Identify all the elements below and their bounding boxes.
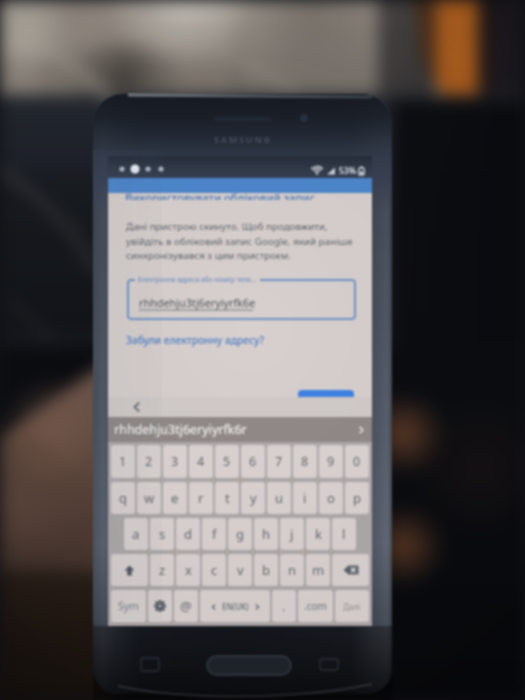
button[interactable]: o — [319, 482, 343, 514]
button[interactable]: u — [267, 482, 291, 514]
button[interactable]: rhhdehju3tj6eryiyrfk6r — [114, 417, 366, 442]
staticText: q — [119, 489, 127, 507]
button[interactable]: 0 — [345, 445, 369, 478]
staticText: 3 — [171, 453, 179, 470]
staticText: rhhdehju3tj6eryiyrfk6r — [114, 421, 247, 438]
button[interactable]: x — [176, 554, 200, 586]
staticText: 6 — [249, 453, 257, 470]
staticText: Дані пристрою скинуто. Щоб продовжити, у… — [126, 220, 353, 262]
button[interactable]: g — [228, 518, 252, 550]
staticText: j — [290, 525, 294, 543]
staticText: w — [144, 489, 155, 507]
staticText: x — [185, 561, 192, 579]
staticText: a — [132, 525, 140, 543]
staticText: 8 — [301, 453, 309, 470]
button[interactable]: n — [280, 554, 304, 586]
button[interactable]: i — [293, 482, 317, 514]
staticText: h — [262, 525, 271, 543]
button[interactable]: r — [189, 482, 213, 514]
staticText: l — [342, 525, 346, 543]
button[interactable]: h — [254, 518, 278, 550]
staticText: @ — [180, 597, 192, 615]
staticText: 1 — [119, 453, 127, 470]
staticText: EN(UK) — [222, 601, 249, 612]
button[interactable]: Back — [131, 401, 143, 413]
staticText: . — [282, 597, 286, 615]
button[interactable]: Далі — [335, 590, 369, 622]
staticText: r — [198, 489, 204, 507]
staticText: 0 — [353, 453, 361, 470]
staticText: i — [303, 489, 307, 507]
button[interactable]: EN(UK) — [200, 590, 270, 622]
button[interactable]: k — [306, 518, 330, 550]
button[interactable]: j — [280, 518, 304, 550]
staticText: p — [353, 489, 361, 507]
staticText: SAMSUNG — [214, 133, 272, 145]
staticText: 2 — [145, 453, 153, 470]
staticText: f — [212, 525, 217, 543]
button[interactable] — [127, 279, 356, 320]
button[interactable]: 5 — [215, 445, 239, 478]
button[interactable]: 8 — [293, 445, 317, 478]
staticText: 53% — [339, 165, 356, 177]
button[interactable]: e — [163, 482, 187, 514]
staticText: c — [211, 561, 218, 579]
button[interactable]: Shift — [111, 554, 148, 586]
staticText: .com — [304, 599, 327, 613]
button[interactable]: l — [332, 518, 356, 550]
button[interactable]: t — [215, 482, 239, 514]
button[interactable]: d — [176, 518, 200, 550]
button[interactable]: c — [202, 554, 226, 586]
button[interactable]: Keyboard settings — [148, 590, 172, 622]
staticText: 4 — [197, 453, 205, 470]
staticText: d — [184, 525, 192, 543]
button[interactable]: q — [111, 482, 135, 514]
staticText: e — [171, 489, 179, 507]
staticText: rhhdehju3tj6eryiyrfk6e — [139, 295, 256, 310]
button[interactable]: 2 — [137, 445, 161, 478]
staticText: o — [327, 489, 335, 507]
button[interactable]: . — [272, 590, 296, 622]
button[interactable]: 7 — [267, 445, 291, 478]
staticText: Sym — [118, 599, 139, 613]
staticText: 7 — [275, 453, 283, 470]
button[interactable]: a — [124, 518, 148, 550]
staticText: g — [236, 525, 244, 543]
staticText: 5 — [223, 453, 231, 470]
button[interactable]: @ — [174, 590, 198, 622]
staticText: Використовувати обліковий запис — [125, 190, 316, 200]
button[interactable]: b — [254, 554, 278, 586]
staticText: 9 — [327, 453, 335, 470]
staticText: Далі — [343, 601, 361, 612]
button[interactable]: y — [241, 482, 265, 514]
staticText: u — [275, 489, 284, 507]
button[interactable]: Забули електронну адресу? — [126, 333, 264, 347]
staticText: m — [312, 561, 325, 579]
button[interactable]: z — [150, 554, 174, 586]
staticText: n — [288, 561, 297, 579]
staticText: k — [315, 525, 322, 543]
staticText: v — [237, 561, 244, 579]
button[interactable]: 9 — [319, 445, 343, 478]
other: More suggestions — [356, 425, 366, 435]
staticText: y — [250, 489, 257, 507]
button[interactable]: 4 — [189, 445, 213, 478]
button[interactable]: v — [228, 554, 252, 586]
button[interactable]: .com — [298, 590, 333, 622]
button[interactable]: Backspace — [332, 554, 369, 586]
staticText: z — [159, 561, 166, 579]
button[interactable]: 1 — [111, 445, 135, 478]
button[interactable]: m — [306, 554, 330, 586]
button[interactable]: s — [150, 518, 174, 550]
button[interactable]: Sym — [111, 590, 146, 622]
button[interactable]: f — [202, 518, 226, 550]
button[interactable] — [298, 390, 354, 397]
staticText: b — [262, 561, 270, 579]
staticText: Електронна адреса або номер теле... — [138, 275, 257, 284]
button[interactable]: p — [345, 482, 369, 514]
staticText: t — [225, 489, 230, 507]
staticText: s — [159, 525, 166, 543]
button[interactable]: 6 — [241, 445, 265, 478]
button[interactable]: 3 — [163, 445, 187, 478]
button[interactable]: w — [137, 482, 161, 514]
